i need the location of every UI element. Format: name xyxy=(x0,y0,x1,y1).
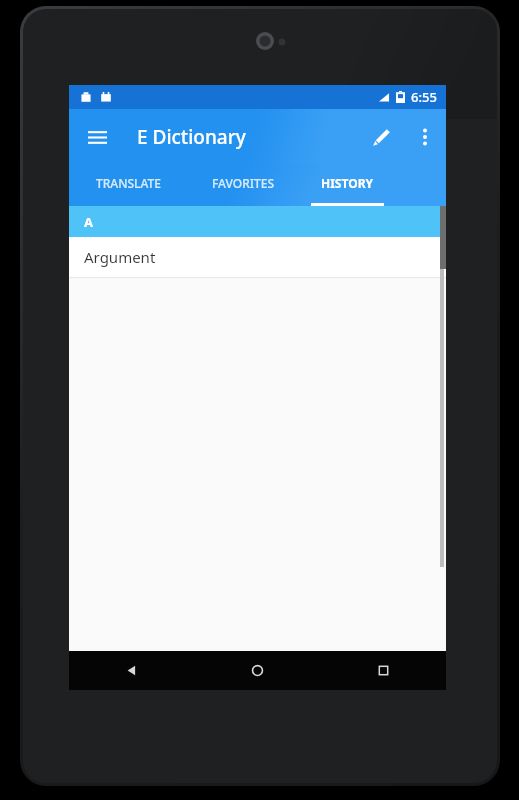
button[interactable]: Home xyxy=(194,651,320,690)
staticText: E Dictionary xyxy=(137,124,246,150)
button[interactable]: Back xyxy=(69,651,194,690)
button[interactable]: More options xyxy=(404,116,446,158)
button[interactable]: HISTORY xyxy=(300,165,395,206)
staticText: FAVORITES xyxy=(212,175,275,191)
staticText: TRANSLATE xyxy=(96,175,161,191)
button[interactable]: Open navigation drawer xyxy=(73,113,121,161)
button[interactable]: Argument xyxy=(69,237,446,277)
button[interactable]: Edit xyxy=(358,114,404,160)
staticText: A xyxy=(84,213,93,231)
staticText: HISTORY xyxy=(321,175,374,191)
staticText: Argument xyxy=(84,247,156,267)
button[interactable]: TRANSLATE xyxy=(69,165,187,206)
button[interactable]: FAVORITES xyxy=(187,165,300,206)
button[interactable]: A xyxy=(69,206,446,237)
button[interactable]: Recent apps xyxy=(320,651,446,690)
staticText: 6:55 xyxy=(411,88,437,106)
